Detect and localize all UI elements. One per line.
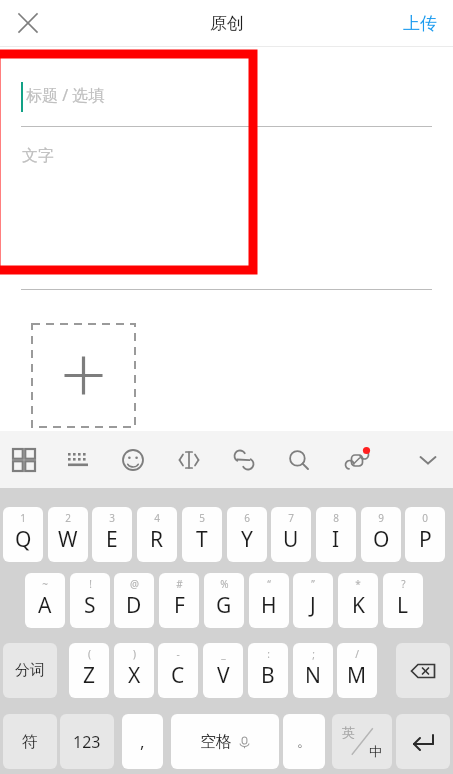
staticText: K [352, 591, 365, 620]
staticText: 7 [288, 511, 294, 525]
staticText: L [397, 591, 409, 620]
button[interactable]: ” [293, 573, 333, 628]
button[interactable]: ; [293, 643, 333, 698]
button[interactable]: 分词 [3, 643, 57, 698]
staticText: I [332, 525, 340, 554]
button[interactable]: 5 [182, 507, 222, 562]
button[interactable]: 符 [3, 714, 57, 769]
staticText: V [217, 661, 230, 690]
staticText: ” [311, 577, 315, 591]
staticText: O [373, 525, 390, 554]
button[interactable]: _ [203, 643, 243, 698]
button[interactable]: 3 [92, 507, 132, 562]
button[interactable]: 123 [60, 714, 114, 769]
staticText: 原创 [210, 13, 244, 34]
staticText: % [220, 577, 229, 591]
button[interactable]: Backspace [396, 643, 450, 698]
button[interactable]: 7 [271, 507, 311, 562]
staticText: ) [133, 647, 136, 661]
button[interactable]: 0 [405, 507, 445, 562]
staticText: X [128, 661, 141, 690]
button[interactable]: Keyboard [56, 431, 100, 488]
button[interactable]: * [338, 573, 378, 628]
staticText: # [176, 577, 183, 591]
staticText: ( [88, 647, 91, 661]
staticText: _ [221, 647, 226, 661]
button[interactable]: Grid [2, 431, 46, 488]
button[interactable]: ) [114, 643, 154, 698]
button[interactable]: : [248, 643, 288, 698]
button[interactable]: # [159, 573, 199, 628]
staticText: W [58, 525, 78, 554]
button[interactable]: ( [69, 643, 109, 698]
button[interactable]: Hide keyboard [406, 431, 450, 488]
staticText: S [84, 591, 96, 620]
staticText: U [283, 525, 299, 554]
button[interactable]: 上传 [395, 5, 445, 42]
button[interactable]: 标题 / 选填 [26, 84, 105, 106]
button[interactable]: Switch language [332, 714, 392, 769]
button[interactable]: 空格 [171, 714, 279, 769]
button[interactable]: 文字 [0, 127, 453, 289]
button[interactable]: / [337, 643, 377, 698]
staticText: H [261, 591, 277, 620]
button[interactable]: , [122, 714, 163, 769]
button[interactable]: ? [383, 573, 423, 628]
staticText: 空格 [200, 732, 232, 752]
staticText: ! [89, 577, 92, 591]
staticText: 中 [369, 743, 382, 759]
staticText: C [171, 661, 185, 690]
staticText: M [347, 661, 367, 690]
button[interactable]: Emoji [111, 431, 155, 488]
button[interactable]: Enter [396, 714, 450, 769]
button[interactable]: @ [114, 573, 154, 628]
button[interactable]: 2 [48, 507, 88, 562]
staticText: T [196, 525, 208, 554]
staticText: 5 [199, 511, 205, 525]
staticText: P [419, 525, 432, 554]
button[interactable]: - [158, 643, 198, 698]
button[interactable]: Edit cursor [167, 431, 211, 488]
button[interactable]: “ [249, 573, 289, 628]
staticText: - [176, 647, 180, 661]
staticText: 1 [20, 511, 26, 525]
staticText: D [126, 591, 142, 620]
staticText: 英 [342, 724, 355, 740]
staticText: 分词 [15, 661, 45, 680]
staticText: : [267, 647, 270, 661]
staticText: J [310, 591, 316, 620]
staticText: G [216, 591, 232, 620]
staticText: 9 [378, 511, 384, 525]
button[interactable]: 。 [283, 714, 325, 769]
button[interactable]: 4 [137, 507, 177, 562]
button[interactable]: Close [6, 1, 50, 45]
staticText: B [261, 661, 275, 690]
staticText: * [355, 577, 361, 591]
staticText: 标题 / 选填 [26, 84, 105, 106]
staticText: 0 [422, 511, 428, 525]
staticText: 4 [154, 511, 160, 525]
staticText: 6 [244, 511, 250, 525]
button[interactable]: % [204, 573, 244, 628]
button[interactable]: 8 [316, 507, 356, 562]
staticText: A [38, 591, 52, 620]
button[interactable]: Search [277, 431, 321, 488]
staticText: 。 [297, 733, 311, 751]
button[interactable]: Skin [335, 431, 379, 488]
button[interactable]: 9 [361, 507, 401, 562]
staticText: “ [267, 577, 271, 591]
button[interactable]: Add image [31, 323, 136, 428]
staticText: 文字 [22, 146, 54, 166]
button[interactable]: 1 [3, 507, 43, 562]
staticText: 123 [73, 731, 101, 753]
staticText: N [305, 661, 321, 690]
staticText: Y [241, 525, 253, 554]
button[interactable]: Attach [222, 431, 266, 488]
staticText: 符 [22, 732, 38, 752]
button[interactable]: ! [70, 573, 110, 628]
staticText: 8 [333, 511, 339, 525]
staticText: @ [130, 577, 139, 591]
staticText: E [106, 525, 118, 554]
button[interactable]: ~ [25, 573, 65, 628]
button[interactable]: 6 [227, 507, 267, 562]
